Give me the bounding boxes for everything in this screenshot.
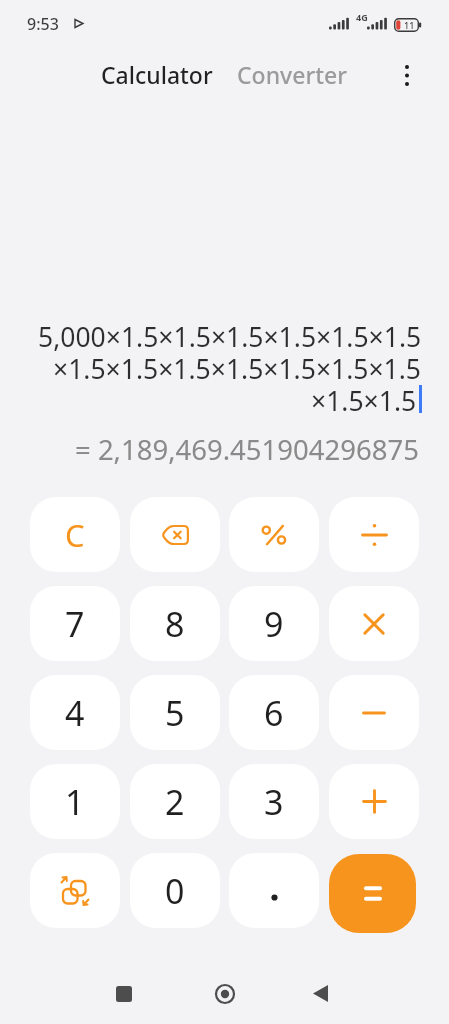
staticText: C <box>65 514 85 556</box>
button[interactable]: 0 <box>130 853 220 928</box>
staticText: 9:53 <box>27 13 59 31</box>
staticText: ×1.5×1.5×1.5×1.5×1.5×1.5×1.5 <box>53 351 422 383</box>
staticText: 4G <box>356 11 368 21</box>
button[interactable] <box>329 675 419 750</box>
button[interactable]: 4 <box>30 675 120 750</box>
button[interactable] <box>107 977 140 1010</box>
button[interactable] <box>329 854 416 933</box>
button[interactable]: 2 <box>130 764 220 839</box>
staticText: 3 <box>264 779 284 825</box>
button[interactable] <box>329 497 419 572</box>
button[interactable] <box>329 764 419 839</box>
button[interactable] <box>229 853 319 928</box>
button[interactable]: 8 <box>130 586 220 661</box>
button[interactable] <box>329 586 419 661</box>
staticText: 1 <box>65 779 85 825</box>
staticText: 2 <box>165 779 185 825</box>
staticText: 6 <box>264 690 284 736</box>
button[interactable] <box>396 61 418 89</box>
button[interactable] <box>130 497 220 572</box>
staticText: 7 <box>65 601 85 647</box>
button[interactable]: 9 <box>229 586 319 661</box>
button[interactable] <box>229 497 319 572</box>
button[interactable]: 3 <box>229 764 319 839</box>
staticText: ×1.5×1.5 <box>311 383 417 415</box>
staticText: Calculator <box>101 59 213 90</box>
button[interactable]: 6 <box>229 675 319 750</box>
button[interactable]: 1 <box>30 764 120 839</box>
button[interactable]: 5 <box>130 675 220 750</box>
staticText: Converter <box>237 59 347 90</box>
button[interactable] <box>30 853 120 928</box>
staticText: 11 <box>404 19 415 31</box>
staticText: 0 <box>165 868 185 914</box>
button[interactable]: Calculator <box>101 58 213 91</box>
staticText: 5 <box>165 690 185 736</box>
staticText: 5,000×1.5×1.5×1.5×1.5×1.5×1.5 <box>38 319 422 351</box>
staticText: 8 <box>165 601 185 647</box>
button[interactable]: C <box>30 497 120 572</box>
button[interactable]: Converter <box>237 58 347 91</box>
button[interactable] <box>208 977 241 1010</box>
staticText: = 2,189,469.451904296875 <box>75 431 419 465</box>
button[interactable] <box>304 977 337 1010</box>
button[interactable]: 7 <box>30 586 120 661</box>
staticText: 4 <box>65 690 85 736</box>
staticText: 9 <box>264 601 284 647</box>
